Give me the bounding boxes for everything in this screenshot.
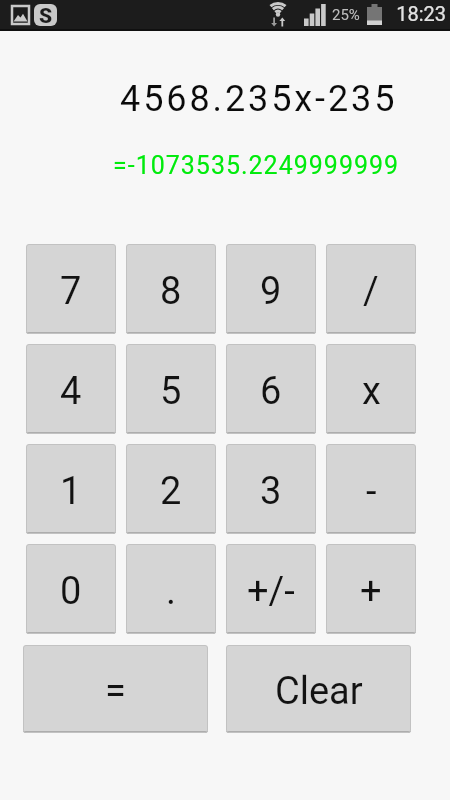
- button[interactable]: 2: [126, 444, 216, 534]
- staticText: 4: [60, 369, 82, 414]
- button[interactable]: 9: [226, 244, 316, 334]
- staticText: 9: [260, 269, 282, 314]
- button[interactable]: 1: [26, 444, 116, 534]
- button[interactable]: 6: [226, 344, 316, 434]
- staticText: +/-: [247, 569, 295, 614]
- staticText: +: [360, 569, 382, 614]
- button[interactable]: x: [326, 344, 416, 434]
- staticText: /: [363, 269, 379, 314]
- staticText: .: [166, 569, 177, 614]
- button[interactable]: =: [23, 645, 208, 733]
- button[interactable]: 3: [226, 444, 316, 534]
- button[interactable]: /: [326, 244, 416, 334]
- staticText: 8: [160, 269, 182, 314]
- staticText: 25%: [332, 6, 360, 24]
- button[interactable]: 8: [126, 244, 216, 334]
- button[interactable]: .: [126, 544, 216, 634]
- staticText: 4568.235x-235: [120, 78, 398, 120]
- staticText: 7: [60, 269, 82, 314]
- button[interactable]: 7: [26, 244, 116, 334]
- staticText: 5: [160, 369, 182, 414]
- button[interactable]: 5: [126, 344, 216, 434]
- staticText: x: [362, 369, 381, 414]
- staticText: 18:23: [396, 2, 446, 25]
- button[interactable]: +/-: [226, 544, 316, 634]
- staticText: 3: [260, 469, 282, 514]
- staticText: =-1073535.2249999999: [113, 151, 400, 180]
- staticText: -: [366, 469, 377, 514]
- staticText: 6: [260, 369, 282, 414]
- staticText: 1: [60, 469, 82, 514]
- staticText: 0: [60, 569, 82, 614]
- button[interactable]: 4: [26, 344, 116, 434]
- staticText: =: [105, 669, 126, 714]
- button[interactable]: +: [326, 544, 416, 634]
- button[interactable]: 0: [26, 544, 116, 634]
- staticText: S: [39, 4, 53, 26]
- button[interactable]: -: [326, 444, 416, 534]
- staticText: 2: [160, 469, 182, 514]
- button[interactable]: Clear: [226, 645, 411, 733]
- staticText: Clear: [275, 669, 363, 714]
